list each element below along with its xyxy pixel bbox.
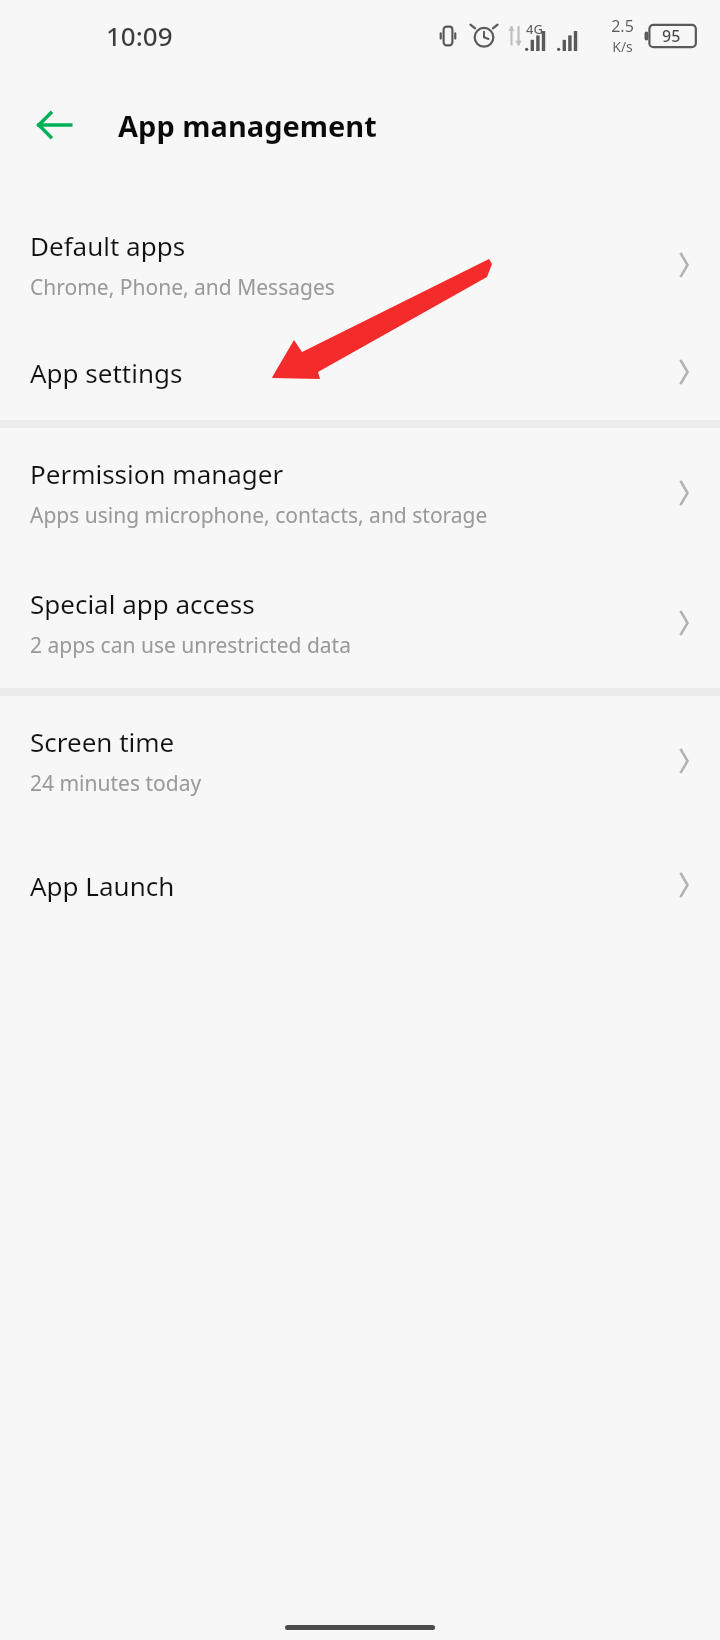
staticText: K/s bbox=[612, 37, 633, 56]
staticText: 95 bbox=[662, 25, 681, 47]
staticText: App management bbox=[118, 106, 377, 145]
button[interactable]: App settings bbox=[0, 324, 720, 420]
button[interactable]: Special app access bbox=[0, 558, 720, 688]
button[interactable]: Screen time bbox=[0, 696, 720, 826]
staticText: 2 apps can use unrestricted data bbox=[30, 631, 351, 660]
button[interactable]: App Launch bbox=[0, 826, 720, 944]
button[interactable]: Default apps bbox=[0, 206, 720, 324]
button[interactable]: Permission manager bbox=[0, 428, 720, 558]
staticText: Default apps bbox=[30, 228, 186, 263]
button[interactable]: Back bbox=[22, 93, 86, 157]
staticText: 24 minutes today bbox=[30, 769, 202, 798]
staticText: 2.5 bbox=[611, 15, 634, 37]
staticText: Apps using microphone, contacts, and sto… bbox=[30, 501, 488, 530]
staticText: 10:09 bbox=[106, 18, 173, 53]
staticText: Permission manager bbox=[30, 456, 284, 491]
staticText: App settings bbox=[30, 355, 183, 390]
staticText: Chrome, Phone, and Messages bbox=[30, 273, 335, 302]
staticText: 4G bbox=[526, 20, 543, 38]
staticText: Special app access bbox=[30, 586, 255, 621]
staticText: App Launch bbox=[30, 868, 175, 903]
staticText: Screen time bbox=[30, 724, 175, 759]
